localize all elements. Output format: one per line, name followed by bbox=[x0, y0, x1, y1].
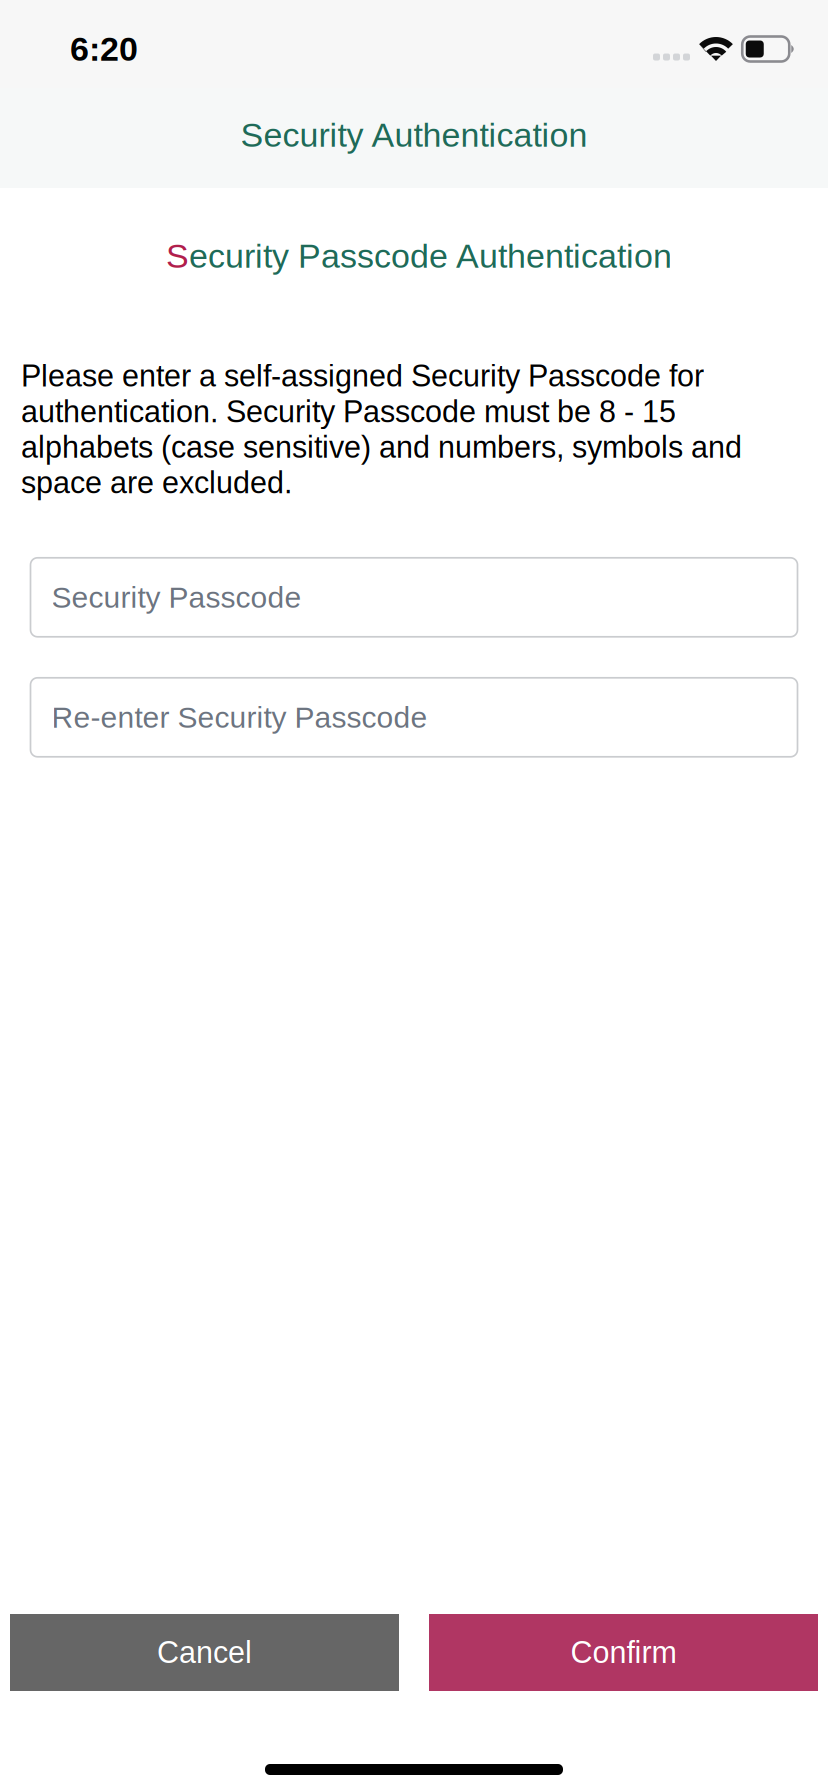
staticText: S bbox=[166, 237, 189, 275]
staticText: Security Passcode bbox=[51, 580, 301, 614]
button[interactable]: Security Passcode bbox=[30, 558, 797, 637]
staticText: Cancel bbox=[157, 1635, 252, 1670]
button[interactable]: Re-enter Security Passcode bbox=[30, 678, 797, 757]
button[interactable]: Cancel bbox=[10, 1614, 399, 1691]
staticText: Confirm bbox=[570, 1635, 676, 1670]
staticText: 6:20 bbox=[70, 30, 138, 68]
staticText: Re-enter Security Passcode bbox=[51, 700, 427, 734]
staticText: Security Authentication bbox=[240, 116, 587, 154]
staticText: ecurity Passcode Authentication bbox=[189, 237, 672, 275]
staticText: Please enter a self-assigned Security Pa… bbox=[21, 359, 742, 500]
button[interactable]: Confirm bbox=[429, 1614, 818, 1691]
